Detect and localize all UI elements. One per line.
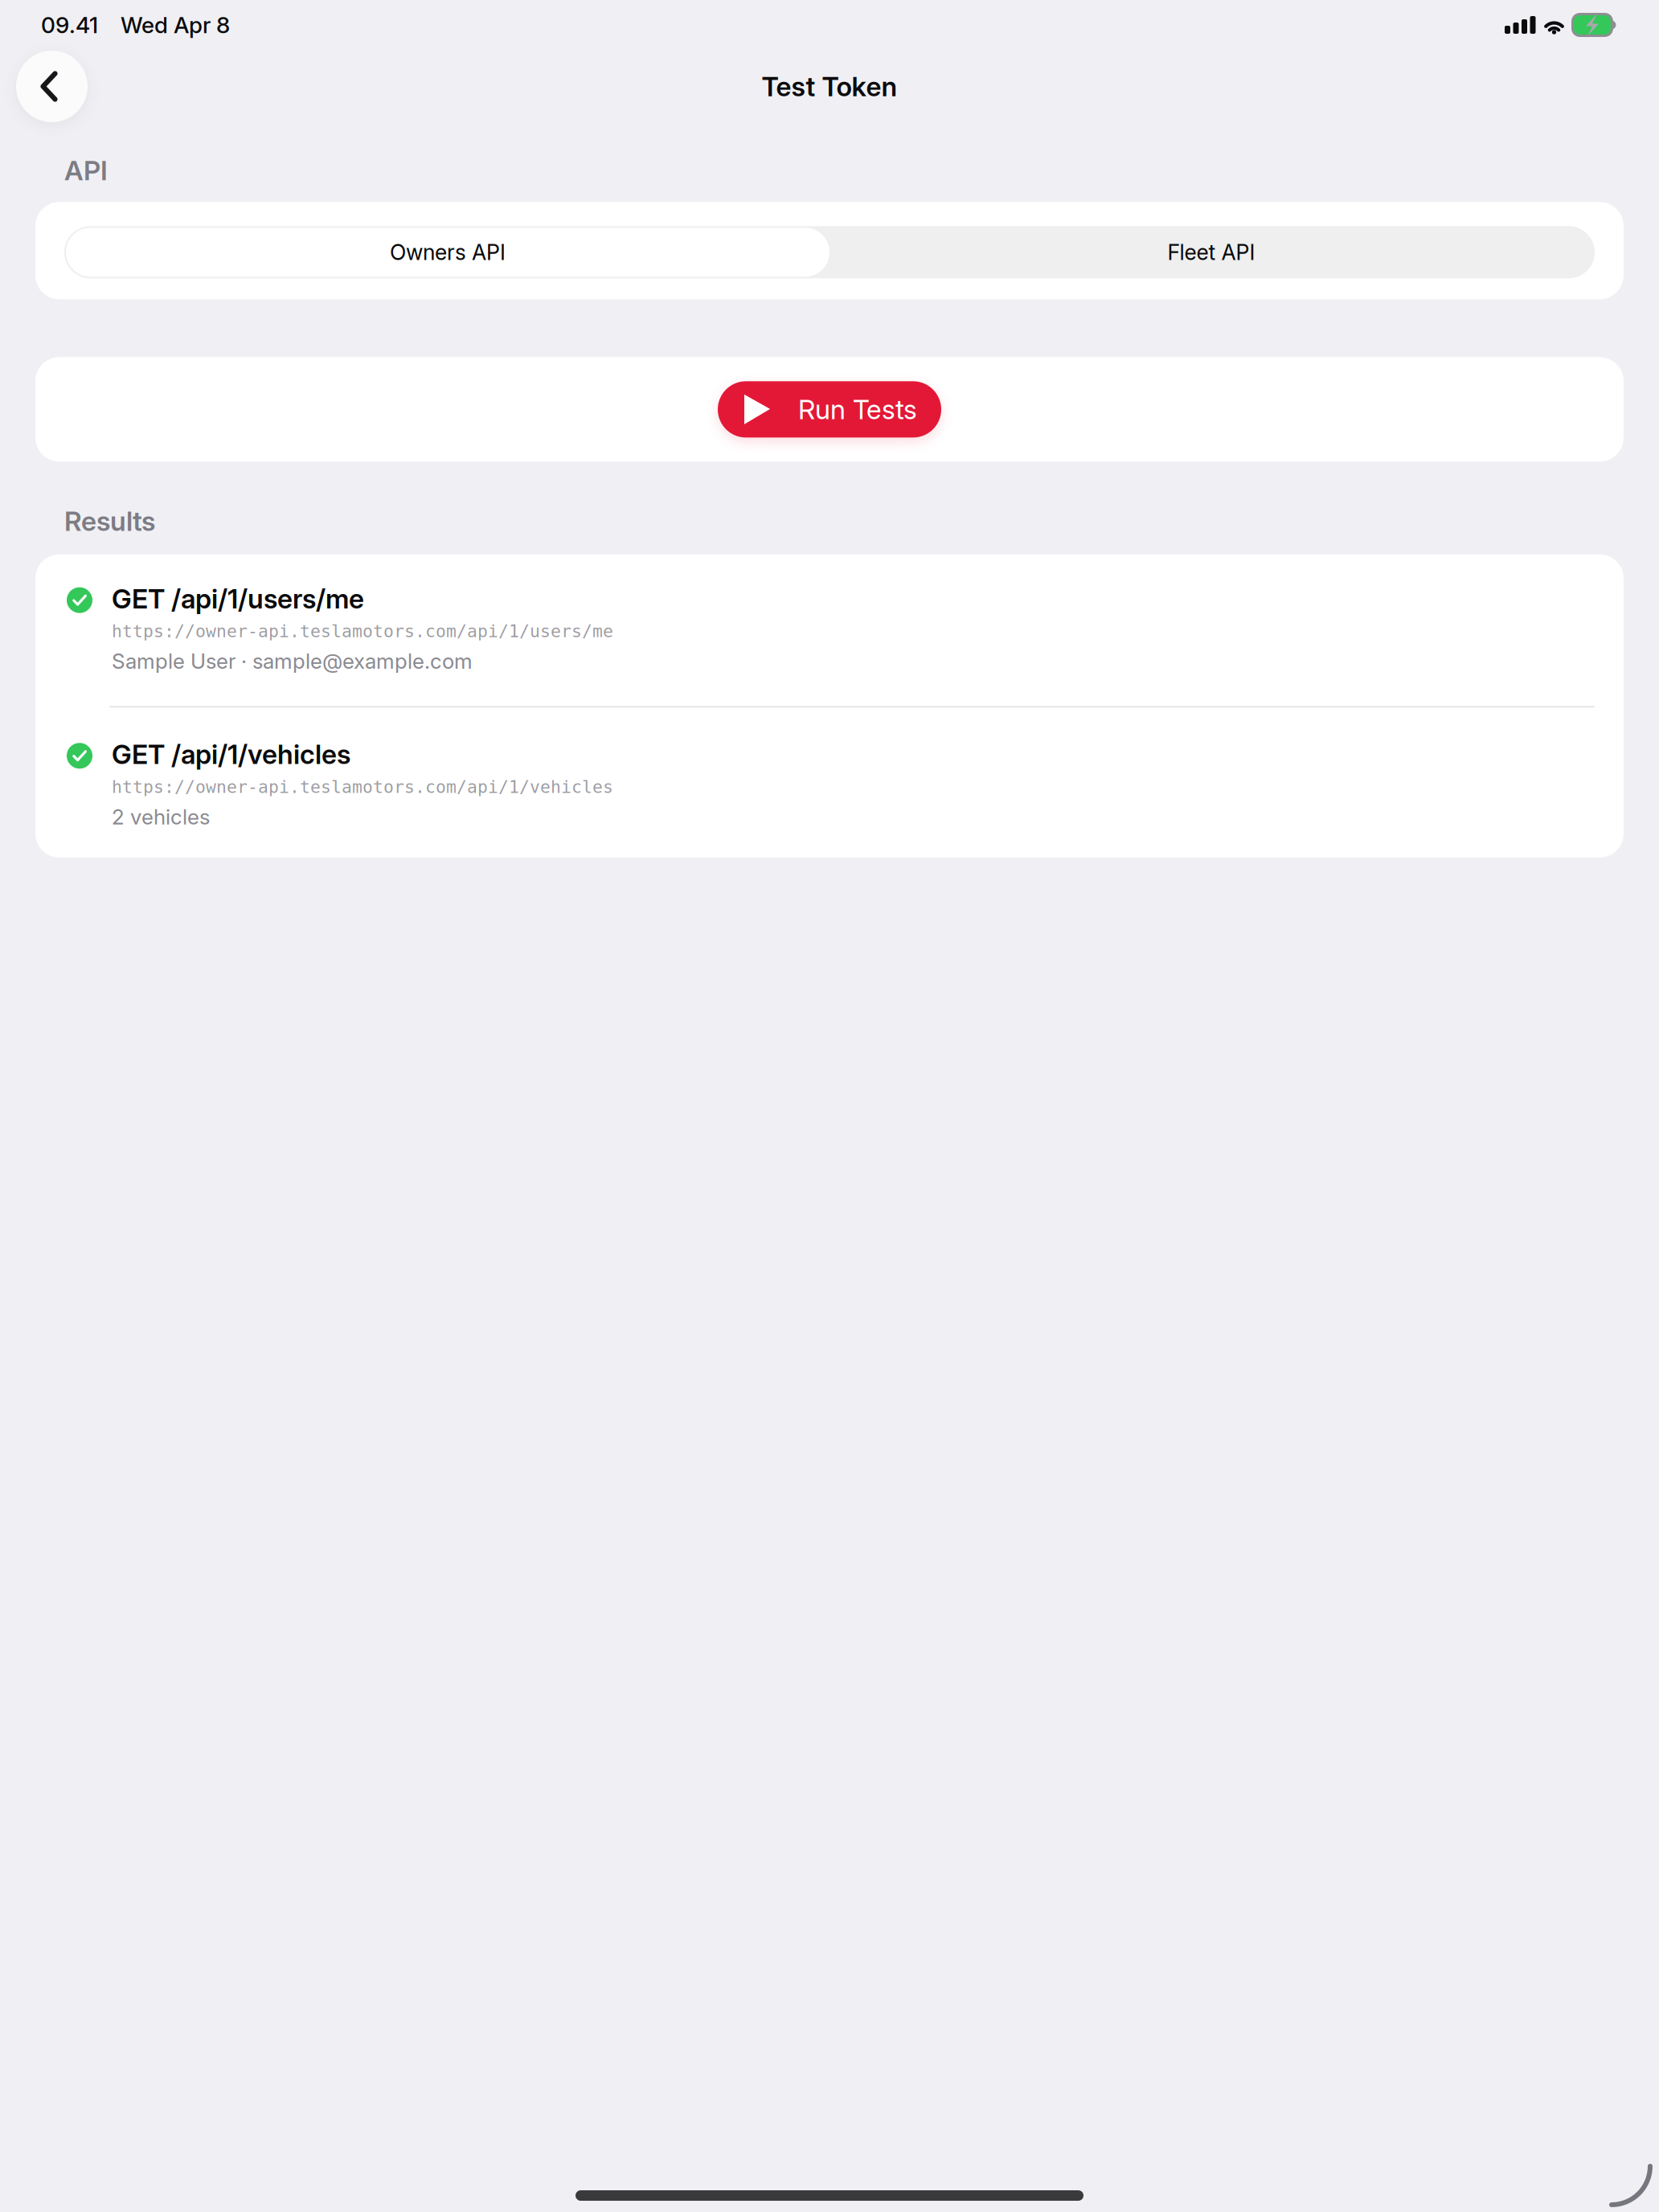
staticText: Run Tests xyxy=(798,393,917,426)
staticText: API xyxy=(64,154,108,187)
staticText: GET /api/1/users/me xyxy=(112,582,364,615)
button[interactable]: Owners API xyxy=(66,228,829,277)
staticText: https://owner-api.teslamotors.com/api/1/… xyxy=(112,621,613,641)
staticText: 09.41 xyxy=(41,11,98,39)
staticText: Wed Apr 8 xyxy=(121,11,230,39)
staticText: 2 vehicles xyxy=(112,804,210,829)
staticText: GET /api/1/vehicles xyxy=(112,738,350,771)
staticText: Fleet API xyxy=(1167,239,1255,265)
staticText: https://owner-api.teslamotors.com/api/1/… xyxy=(112,777,613,797)
button[interactable]: Fleet API xyxy=(829,228,1593,277)
staticText: Results xyxy=(64,505,155,537)
staticText: Sample User · sample@example.com xyxy=(112,648,473,674)
staticText: Test Token xyxy=(762,70,897,103)
button[interactable]: Run Tests xyxy=(718,381,941,437)
staticText: Owners API xyxy=(390,239,506,265)
button[interactable]: Back xyxy=(16,51,88,122)
